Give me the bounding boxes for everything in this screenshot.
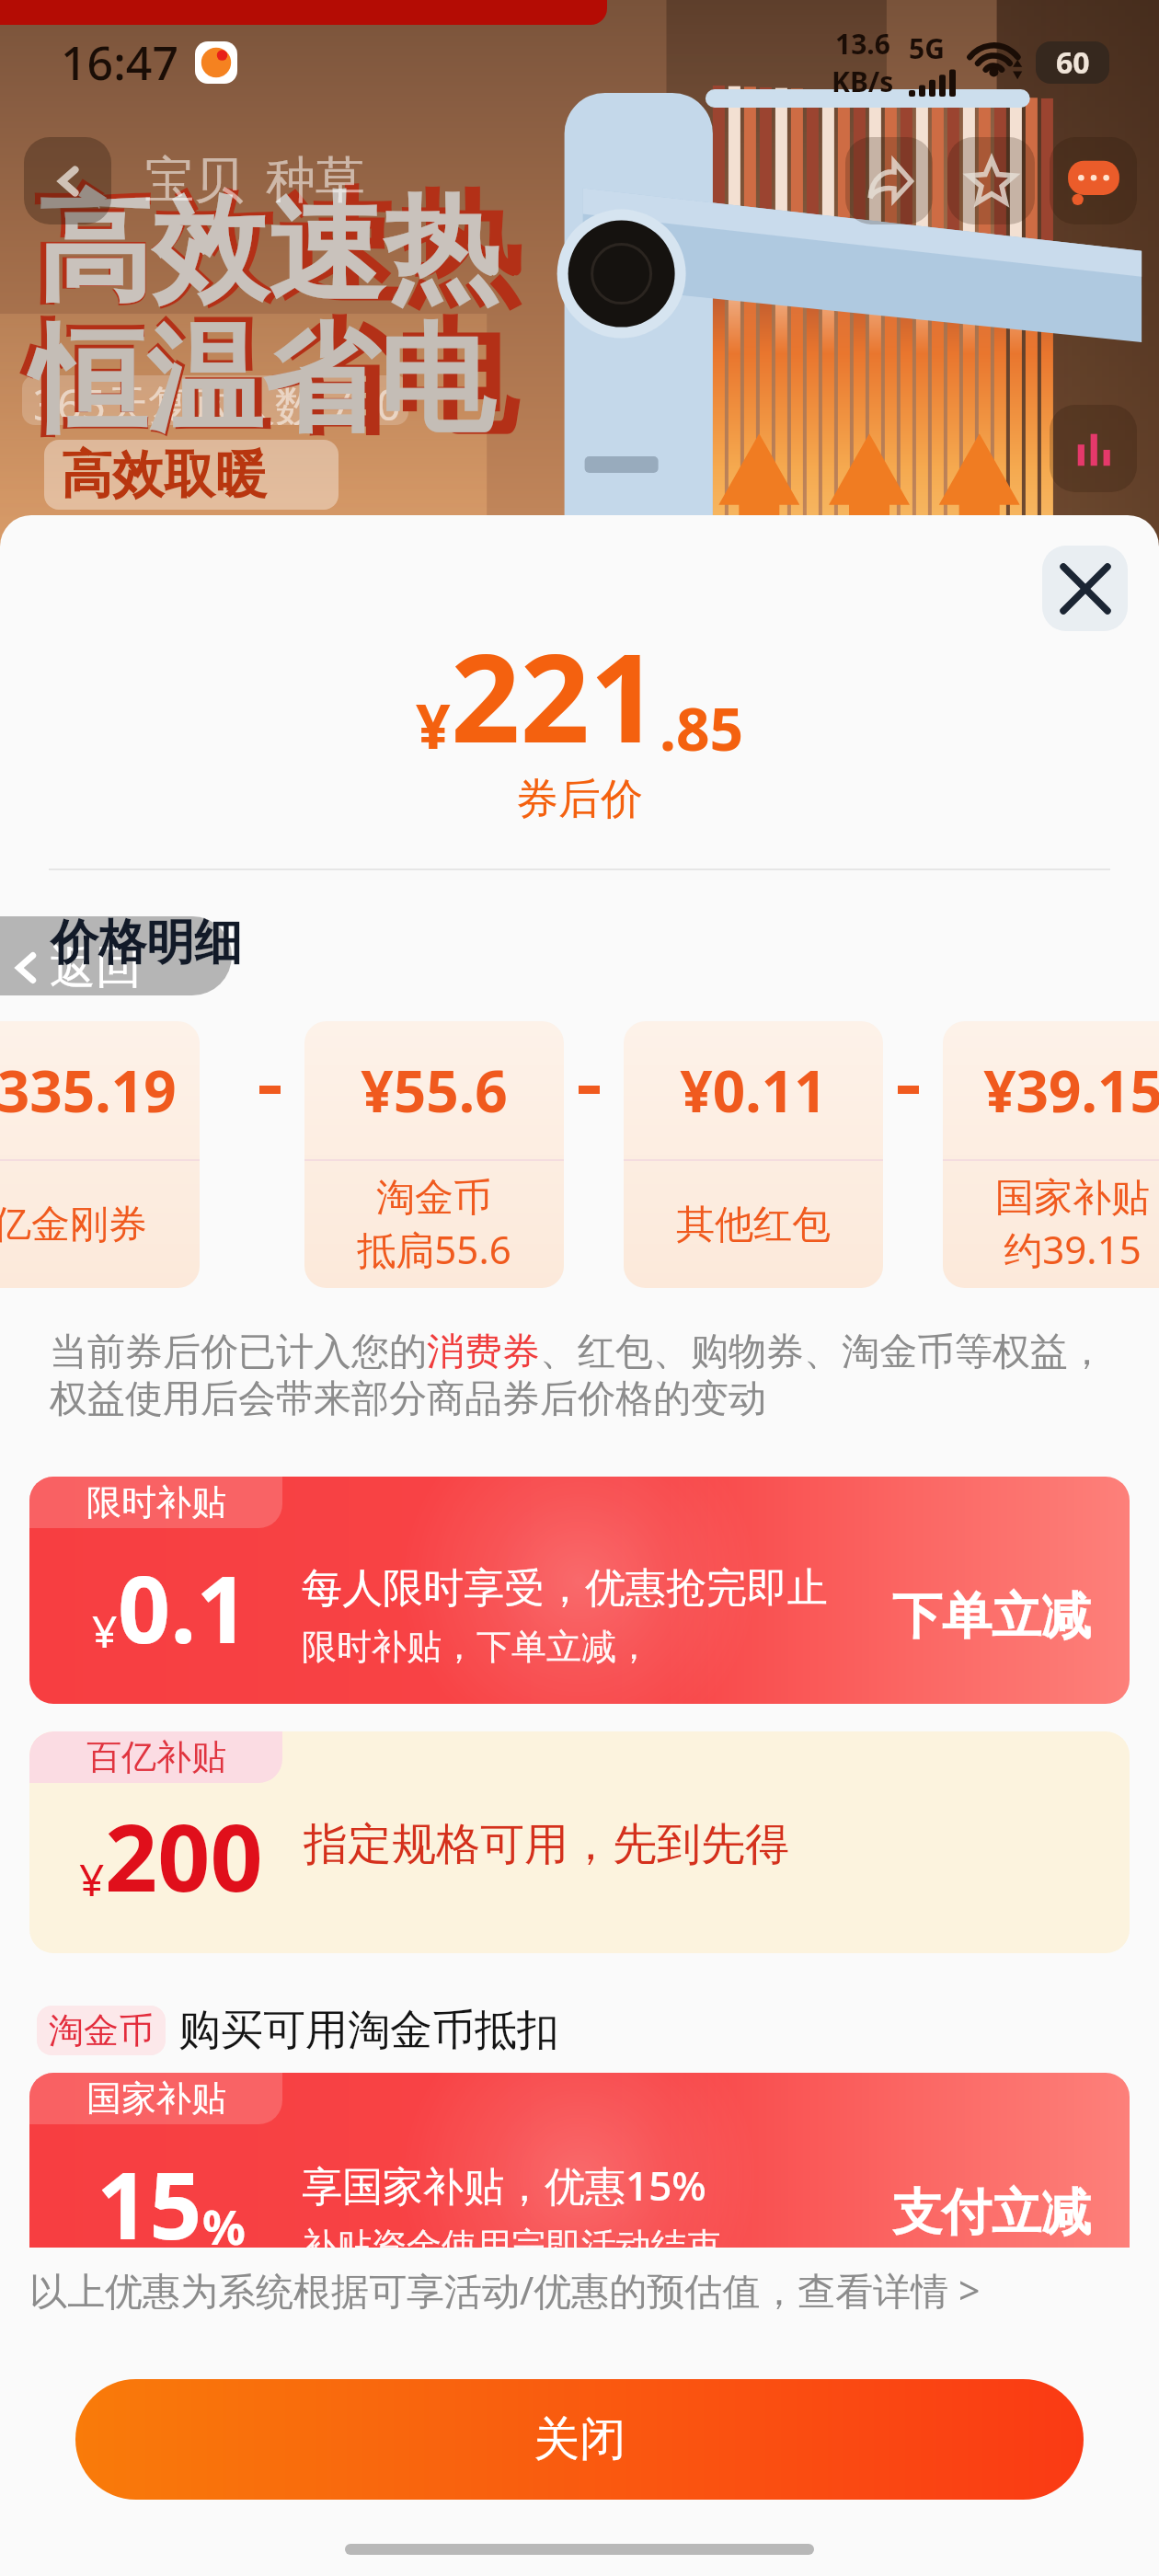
- staticText: ¥39.15: [983, 1052, 1159, 1129]
- staticText: %: [202, 2193, 246, 2259]
- staticText: 高效取暖: [61, 443, 267, 508]
- staticText: 5G: [909, 29, 945, 67]
- button[interactable]: Share: [845, 137, 933, 224]
- button[interactable]: 以上优惠为系统根据可享活动/优惠的预估值，查看详情 >: [29, 2259, 981, 2321]
- staticText: 当前券后价已计入您的消费券、红包、购物券、淘金币等权益， 权益使用后会带来部分商…: [50, 1328, 1106, 1422]
- staticText: 限时补贴: [86, 1480, 226, 1524]
- button[interactable]: Back: [0, 916, 232, 995]
- button[interactable]: ¥39.15: [943, 1021, 1159, 1288]
- button[interactable]: Close: [1042, 546, 1128, 631]
- button[interactable]: Price chart: [1050, 405, 1137, 492]
- button[interactable]: 国家补贴: [29, 2073, 1130, 2300]
- button[interactable]: ¥335.19: [0, 1021, 200, 1288]
- staticText: ¥55.6: [361, 1052, 508, 1129]
- staticText: ¥335.19: [0, 1052, 177, 1129]
- staticText: 享国家补贴，优惠15%: [302, 2157, 706, 2213]
- staticText: 13.6: [835, 25, 890, 63]
- staticText: 购买可用淘金币抵扣: [178, 2004, 559, 2057]
- button[interactable]: Back: [24, 137, 111, 224]
- button[interactable]: 种草: [255, 136, 376, 224]
- staticText: 价格明细: [51, 913, 242, 973]
- staticText: 返回: [50, 938, 142, 995]
- staticText: 恒温省电: [24, 302, 517, 457]
- staticText: 200: [105, 1793, 263, 1918]
- staticText: 下单立减: [892, 1585, 1091, 1648]
- staticText: ¥: [416, 684, 451, 766]
- staticText: KB/s: [832, 63, 894, 100]
- button[interactable]: ¥0.11: [624, 1021, 883, 1288]
- button[interactable]: 限时补贴: [29, 1477, 1130, 1704]
- staticText: 其他红包: [676, 1201, 831, 1249]
- staticText: .85: [660, 688, 744, 768]
- staticText: 淘金币: [376, 1174, 492, 1223]
- staticText: 每人限时享受，优惠抢完即止: [302, 1563, 828, 1614]
- staticText: 种草: [266, 149, 365, 212]
- button[interactable]: Favorite: [947, 137, 1035, 224]
- staticText: 关闭: [534, 2410, 625, 2468]
- staticText: 宝贝: [144, 149, 244, 212]
- staticText: 亿金刚券: [0, 1201, 147, 1249]
- staticText: ¥: [79, 1849, 105, 1909]
- staticText: 221: [451, 613, 660, 778]
- button[interactable]: Messages: [1050, 137, 1137, 224]
- button[interactable]: ¥55.6: [304, 1021, 564, 1288]
- staticText: 淘金币: [49, 2008, 154, 2053]
- staticText: 60: [1056, 42, 1090, 83]
- staticText: ¥0.11: [680, 1052, 827, 1129]
- staticText: 16:47: [61, 31, 178, 94]
- staticText: 指定规格可用，先到先得: [304, 1817, 789, 1872]
- staticText: 补贴资金使用完即活动结束: [302, 2224, 721, 2268]
- staticText: 15: [97, 2141, 202, 2266]
- staticText: 百亿补贴: [86, 1735, 226, 1779]
- button[interactable]: 关闭: [75, 2379, 1084, 2500]
- staticText: 0.1: [118, 1545, 249, 1670]
- staticText: 高效速热: [36, 178, 499, 324]
- staticText: 抵扃55.6: [357, 1223, 511, 1275]
- staticText: 国家补贴: [86, 2076, 226, 2121]
- staticText: 限时补贴，下单立减，: [302, 1625, 651, 1669]
- staticText: 国家补贴: [995, 1174, 1150, 1223]
- staticText: 以上优惠为系统根据可享活动/优惠的预估值，查看详情 >: [29, 2264, 981, 2316]
- button[interactable]: 宝贝: [133, 136, 255, 224]
- button[interactable]: 淘金币: [37, 2004, 559, 2057]
- staticText: 365天复购人数 700+: [33, 375, 408, 425]
- staticText: 恒温省电: [30, 308, 494, 454]
- staticText: 支付立减: [892, 2181, 1091, 2244]
- staticText: 约39.15: [1004, 1223, 1142, 1275]
- staticText: 券后价: [0, 773, 1159, 826]
- staticText: 高效速热: [29, 171, 522, 327]
- staticText: ¥: [92, 1601, 118, 1661]
- button[interactable]: 百亿补贴: [29, 1731, 1130, 1953]
